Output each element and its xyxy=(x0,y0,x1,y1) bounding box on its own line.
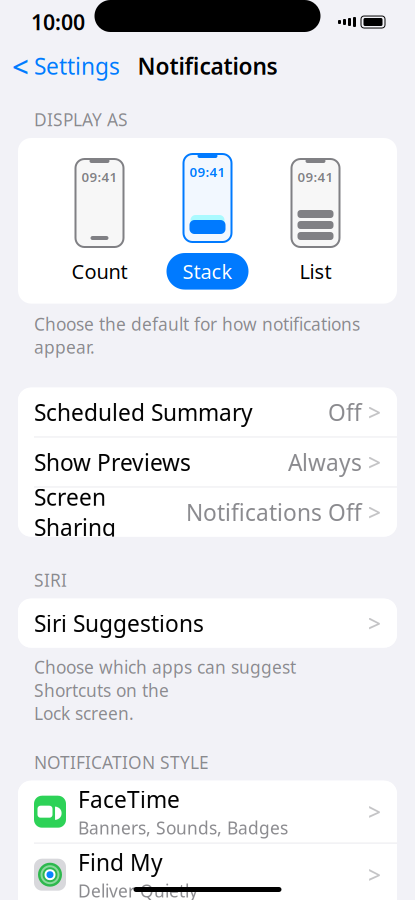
button[interactable]: Siri Suggestions xyxy=(18,599,397,648)
staticText: Always xyxy=(288,447,362,477)
staticText: 10:00 xyxy=(31,8,85,36)
staticText: Off xyxy=(328,397,362,427)
staticText: > xyxy=(368,608,381,638)
button[interactable]: ◗ xyxy=(18,781,397,843)
staticText: FaceTime xyxy=(78,784,180,814)
button[interactable]: 09:41 xyxy=(261,157,369,285)
staticText: 09:41 xyxy=(189,163,225,181)
staticText: Show Previews xyxy=(34,447,191,477)
staticText: Deliver Quietly xyxy=(78,879,198,900)
staticText: < xyxy=(12,46,29,85)
staticText: > xyxy=(368,797,381,827)
button[interactable]: Scheduled Summary xyxy=(18,388,397,437)
staticText: Settings xyxy=(34,51,120,81)
button[interactable]: Show Previews xyxy=(18,438,397,487)
staticText: Count xyxy=(71,258,127,285)
staticText: List xyxy=(299,258,331,285)
staticText: Choose which apps can suggest Shortcuts … xyxy=(34,656,296,725)
staticText: > xyxy=(368,497,381,527)
staticText: 09:41 xyxy=(297,168,333,186)
staticText: Scheduled Summary xyxy=(34,397,253,427)
staticText: NOTIFICATION STYLE xyxy=(34,751,209,774)
staticText: Stack xyxy=(182,258,232,285)
staticText: Notifications Off xyxy=(186,497,362,527)
staticText: Choose the default for how notifications… xyxy=(34,313,360,359)
staticText: Find My xyxy=(78,847,163,877)
staticText: Notifications xyxy=(137,51,277,81)
button[interactable]: 09:41 xyxy=(153,152,261,290)
staticText: > xyxy=(368,447,381,477)
staticText: ◗ xyxy=(53,802,62,822)
staticText: Screen Sharing xyxy=(34,482,116,542)
staticText: > xyxy=(368,397,381,427)
staticText: > xyxy=(368,860,381,890)
staticText: SIRI xyxy=(34,569,67,592)
button[interactable]: Find My xyxy=(18,844,397,900)
button[interactable]: 09:41 xyxy=(45,157,153,285)
staticText: Banners, Sounds, Badges xyxy=(78,816,288,839)
staticText: DISPLAY AS xyxy=(34,108,128,131)
staticText: Siri Suggestions xyxy=(34,608,204,638)
button[interactable]: < xyxy=(0,40,132,91)
button[interactable]: Screen Sharing xyxy=(18,488,397,537)
staticText: 09:41 xyxy=(81,168,117,186)
